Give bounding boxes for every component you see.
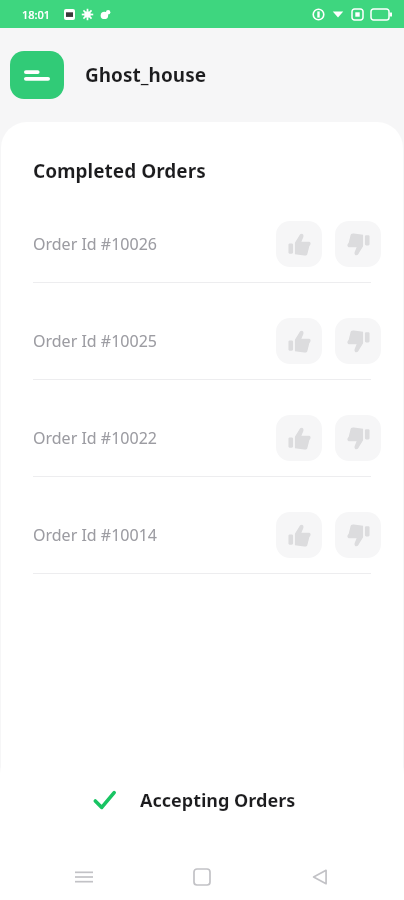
button[interactable]: Thumbs down xyxy=(335,318,381,364)
staticText: Accepting Orders xyxy=(140,788,296,813)
staticText: Ghost_house xyxy=(85,62,207,88)
button[interactable]: Home xyxy=(180,855,224,899)
staticText: Order Id #10022 xyxy=(33,427,157,449)
button[interactable]: Back xyxy=(298,855,342,899)
staticText: Order Id #10014 xyxy=(33,524,157,546)
staticText: Order Id #10026 xyxy=(33,233,157,255)
button[interactable]: Recents xyxy=(62,855,106,899)
button[interactable]: Thumbs up xyxy=(276,221,322,267)
button[interactable]: Order Id #10025 xyxy=(1,303,403,379)
staticText: 18:01 xyxy=(22,7,51,22)
button[interactable]: Thumbs up xyxy=(276,318,322,364)
button[interactable]: Menu xyxy=(10,51,64,99)
staticText: Order Id #10025 xyxy=(33,330,157,352)
button[interactable]: Order Id #10026 xyxy=(1,206,403,282)
button[interactable]: Thumbs down xyxy=(335,415,381,461)
button[interactable]: Thumbs up xyxy=(276,415,322,461)
button[interactable]: Thumbs up xyxy=(276,512,322,558)
button[interactable]: Order Id #10022 xyxy=(1,400,403,476)
button[interactable]: Order Id #10014 xyxy=(1,497,403,573)
staticText: Completed Orders xyxy=(33,158,206,184)
button[interactable]: Accepting Orders xyxy=(78,774,296,826)
button[interactable]: Thumbs down xyxy=(335,512,381,558)
button[interactable]: Thumbs down xyxy=(335,221,381,267)
